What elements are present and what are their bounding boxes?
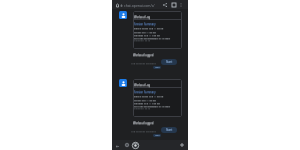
button[interactable]: chat.openai.com/c/8f3a1 (120, 2, 162, 8)
button[interactable]: Details (154, 46, 163, 49)
button[interactable]: New tab (179, 142, 185, 148)
button[interactable]: Details (154, 114, 163, 117)
staticText: Session Summary (134, 90, 156, 94)
staticText: Bench Press 3×8 — 60 kg (134, 26, 164, 29)
staticText: Bench Press 3×8 — 60 kg (134, 94, 164, 97)
button[interactable]: Tabs (171, 2, 177, 8)
button[interactable]: Start (161, 127, 177, 133)
staticText: Session Summary (134, 91, 156, 95)
staticText: Start (166, 60, 173, 64)
staticText: chat.openai.com/c/8f3a1 (124, 3, 162, 8)
staticText: Deadlift 2×5 — 100 kg (134, 101, 160, 104)
staticText: Pull-ups bodyweight 3×10 reps (134, 104, 171, 107)
staticText: Duration: 45 m (134, 40, 151, 43)
button[interactable]: Share (162, 2, 168, 8)
staticText: Workout logged (133, 121, 154, 125)
staticText: Bench Press 3×8 — 60 kg (134, 95, 164, 98)
button[interactable]: Home (114, 2, 120, 8)
staticText: Workout logged (133, 122, 154, 126)
button[interactable]: Start (161, 59, 177, 65)
staticText: Bench Press 3×8 — 60 kg (134, 27, 164, 30)
button[interactable]: Next (153, 66, 161, 69)
staticText: Session Summary (134, 23, 156, 27)
staticText: Details (154, 46, 163, 49)
staticText: Next (155, 134, 160, 137)
staticText: Workout logged (133, 54, 154, 58)
staticText: Log another session? (131, 129, 156, 132)
staticText: Log another session? (131, 130, 156, 133)
staticText: Next (155, 66, 160, 69)
staticText: Details (154, 114, 163, 117)
staticText: Pull-ups bodyweight 3×10 reps (134, 105, 171, 108)
staticText: Workout logged (133, 53, 154, 57)
staticText: Start (166, 128, 173, 132)
staticText: Deadlift 2×5 — 100 kg (134, 34, 160, 37)
staticText: Deadlift 2×5 — 100 kg (134, 33, 160, 36)
button[interactable]: Assistant (131, 141, 140, 150)
button[interactable]: More options (178, 2, 184, 8)
staticText: Session Summary (134, 22, 156, 26)
button[interactable]: Assistant avatar (119, 11, 127, 19)
staticText: Squat 4×6 — 85 kg (134, 98, 156, 101)
staticText: Workout Log (134, 83, 151, 87)
staticText: Pull-ups bodyweight 3×10 reps (134, 36, 171, 39)
staticText: Workout Log (134, 15, 151, 19)
staticText: Duration: 45 m (134, 108, 151, 111)
staticText: Pull-ups bodyweight 3×10 reps (134, 37, 171, 40)
staticText: Duration: 45 m (134, 39, 151, 42)
button[interactable]: Back (114, 143, 120, 149)
staticText: Squat 4×6 — 85 kg (134, 30, 156, 33)
button[interactable]: Next (153, 134, 161, 137)
staticText: Details (154, 47, 163, 49)
button[interactable]: Assistant avatar (119, 79, 127, 87)
staticText: Log another session? (131, 62, 156, 65)
staticText: Details (154, 115, 163, 117)
staticText: Squat 4×6 — 85 kg (134, 99, 156, 102)
staticText: Squat 4×6 — 85 kg (134, 31, 156, 34)
button[interactable]: History (124, 142, 130, 148)
staticText: Duration: 45 m (134, 107, 151, 110)
staticText: Workout Log (134, 84, 151, 88)
staticText: Log another session? (131, 61, 156, 64)
staticText: Deadlift 2×5 — 100 kg (134, 102, 160, 105)
staticText: Workout Log (134, 16, 151, 20)
